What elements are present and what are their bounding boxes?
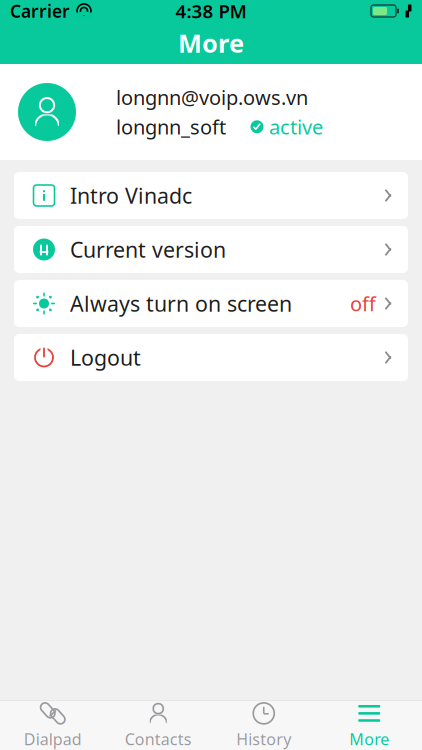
staticText: longnn@voip.ows.vn [116,84,308,110]
staticText: Contacts [125,728,192,750]
button[interactable]: Always turn on screen [14,280,408,327]
button[interactable]: More [316,701,422,749]
staticText: 4:38 PM [175,0,246,23]
button[interactable]: History [211,701,316,749]
button[interactable]: Dialpad [0,701,105,749]
staticText: Carrier [10,0,70,22]
staticText: Current version [70,235,226,264]
button[interactable]: Logout [14,334,408,381]
button[interactable]: Intro Vinadc [14,172,408,219]
button[interactable]: Contacts [105,701,211,749]
staticText: History [236,728,291,750]
staticText: longnn_soft [116,113,226,140]
staticText: Intro Vinadc [70,181,192,210]
staticText: active [269,113,323,140]
staticText: Dialpad [24,728,82,750]
staticText: More [178,26,244,60]
staticText: More [349,728,389,750]
staticText: off [350,290,376,317]
staticText: Always turn on screen [70,289,292,318]
button[interactable]: Current version [14,226,408,273]
staticText: Logout [70,343,141,372]
